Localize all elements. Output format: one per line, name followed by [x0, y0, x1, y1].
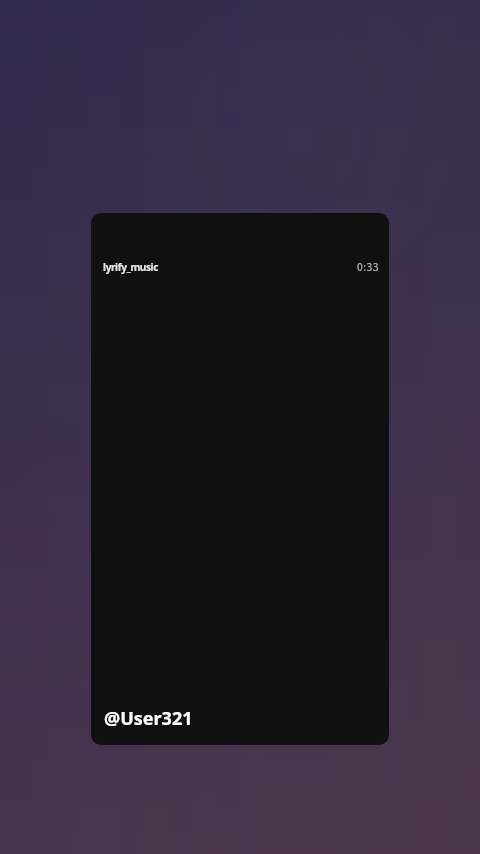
button[interactable]: @User321	[104, 706, 193, 731]
button[interactable]: Lyric story preview	[91, 213, 389, 745]
button[interactable]: lyrify_music	[103, 260, 159, 274]
staticText: 0:33	[357, 260, 379, 274]
